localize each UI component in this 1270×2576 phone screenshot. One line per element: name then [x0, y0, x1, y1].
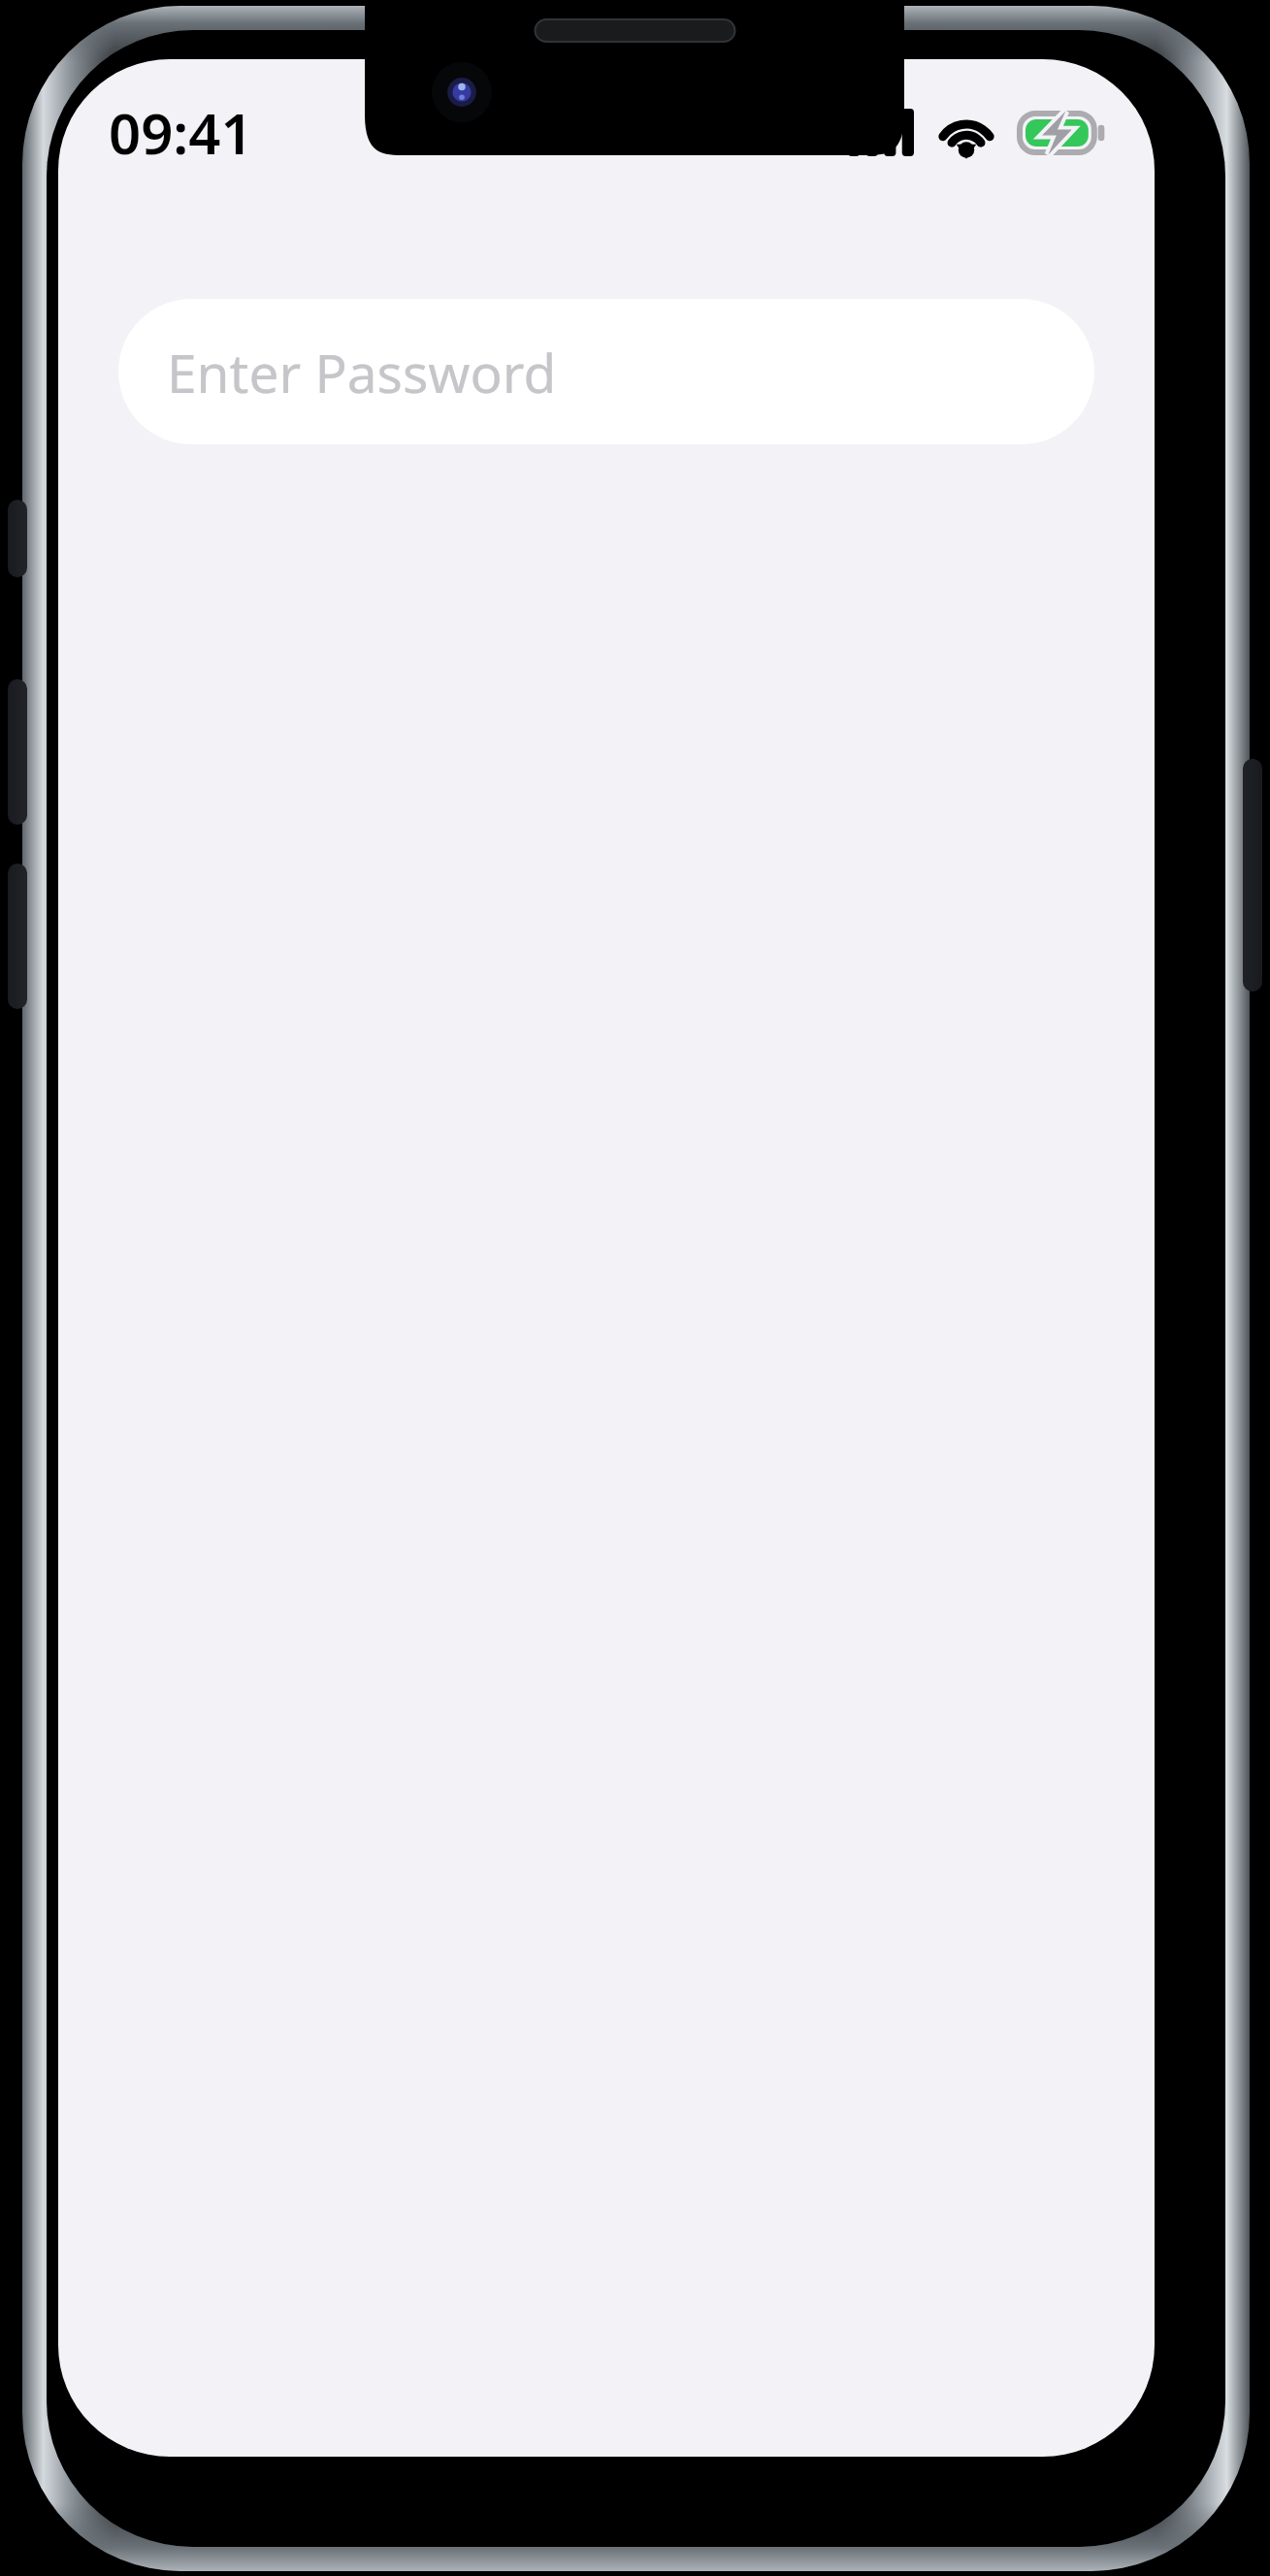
staticText: Enter Password	[167, 336, 557, 408]
staticText: 09:41	[109, 94, 253, 171]
button[interactable]: Enter Password	[118, 299, 1094, 444]
